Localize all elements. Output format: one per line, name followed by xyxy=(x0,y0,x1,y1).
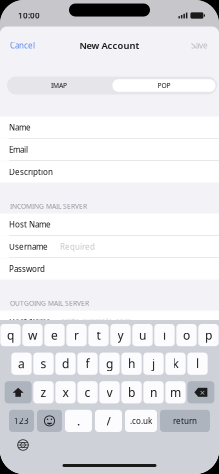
button[interactable]: q xyxy=(0,324,21,346)
button[interactable]: return xyxy=(160,410,210,432)
staticText: INCOMING MAIL SERVER xyxy=(10,202,87,211)
staticText: x xyxy=(62,384,68,400)
staticText: h xyxy=(128,356,135,372)
staticText: s xyxy=(40,356,46,372)
staticText: POP xyxy=(157,81,170,90)
staticText: Username xyxy=(9,241,48,252)
button[interactable]: c xyxy=(77,381,98,403)
button[interactable]: .co.uk xyxy=(125,410,157,432)
button[interactable]: r xyxy=(66,324,87,346)
button[interactable]: f xyxy=(77,353,98,375)
button[interactable]: Next keyboard xyxy=(0,438,32,452)
staticText: m xyxy=(170,384,181,400)
button[interactable]: t xyxy=(88,324,109,346)
staticText: r xyxy=(74,327,79,343)
staticText: y xyxy=(117,327,123,343)
staticText: Save xyxy=(191,40,208,51)
staticText: n xyxy=(150,384,157,400)
button[interactable]: m xyxy=(165,381,186,403)
button[interactable]: d xyxy=(55,353,76,375)
button[interactable]: Username xyxy=(0,236,219,257)
staticText: p xyxy=(205,327,212,343)
staticText: × xyxy=(200,386,205,398)
staticText: Required xyxy=(60,241,95,252)
staticText: q xyxy=(7,327,14,343)
staticText: u xyxy=(139,327,146,343)
button[interactable]: w xyxy=(22,324,43,346)
staticText: a xyxy=(18,356,25,372)
button[interactable]: a xyxy=(11,353,32,375)
button[interactable]: / xyxy=(95,410,122,432)
staticText: b xyxy=(128,384,135,400)
button[interactable]: Delete xyxy=(187,381,214,403)
button[interactable]: Name xyxy=(0,116,219,138)
staticText: / xyxy=(106,413,110,429)
button[interactable]: POP xyxy=(111,76,217,94)
staticText: l xyxy=(196,356,199,372)
staticText: o xyxy=(183,327,190,343)
staticText: t xyxy=(96,327,100,343)
staticText: k xyxy=(172,356,178,372)
staticText: IMAP xyxy=(51,81,67,90)
staticText: Description xyxy=(9,167,53,177)
staticText: Host Name xyxy=(9,316,51,327)
staticText: g xyxy=(106,356,113,372)
staticText: e xyxy=(51,327,58,343)
staticText: Host Name xyxy=(9,219,51,230)
button[interactable]: s xyxy=(33,353,54,375)
staticText: w xyxy=(28,327,37,343)
button[interactable]: p xyxy=(198,324,219,346)
staticText: d xyxy=(62,356,69,372)
button[interactable]: u xyxy=(132,324,153,346)
button[interactable]: g xyxy=(99,353,120,375)
staticText: Email xyxy=(9,144,28,155)
button[interactable]: j xyxy=(143,353,164,375)
button[interactable]: Numbers xyxy=(9,410,34,432)
staticText: New Account xyxy=(79,39,139,52)
staticText: Password xyxy=(9,264,45,274)
button[interactable]: Emoji xyxy=(37,410,62,432)
staticText: smtp.example.com xyxy=(61,316,131,327)
button[interactable]: Shift xyxy=(5,381,32,403)
button[interactable]: v xyxy=(99,381,120,403)
button[interactable]: . xyxy=(65,410,92,432)
staticText: c xyxy=(84,384,90,400)
staticText: f xyxy=(85,356,89,372)
button[interactable]: Password xyxy=(0,258,219,280)
staticText: .co.uk xyxy=(130,416,152,426)
button[interactable]: Cancel xyxy=(0,34,43,56)
staticText: 10:00 xyxy=(18,10,40,21)
button[interactable]: h xyxy=(121,353,142,375)
button[interactable]: o xyxy=(176,324,197,346)
staticText: 123 xyxy=(14,416,29,426)
staticText: i xyxy=(163,327,166,343)
button[interactable]: e xyxy=(44,324,65,346)
button[interactable]: i xyxy=(154,324,175,346)
button[interactable]: Email xyxy=(0,139,219,160)
button[interactable]: Description xyxy=(0,161,219,183)
staticText: Cancel xyxy=(10,40,35,51)
button[interactable]: z xyxy=(33,381,54,403)
staticText: OUTGOING MAIL SERVER xyxy=(10,299,89,308)
button[interactable]: k xyxy=(165,353,186,375)
button[interactable]: Host Name xyxy=(0,311,219,332)
button[interactable]: l xyxy=(187,353,208,375)
button[interactable]: IMAP xyxy=(7,76,111,94)
staticText: . xyxy=(77,413,80,429)
staticText: v xyxy=(106,384,112,400)
staticText: Name xyxy=(9,122,31,133)
staticText: j xyxy=(152,356,155,372)
button[interactable]: b xyxy=(121,381,142,403)
staticText: return xyxy=(173,416,197,426)
button[interactable]: y xyxy=(110,324,131,346)
button[interactable]: x xyxy=(55,381,76,403)
button[interactable]: n xyxy=(143,381,164,403)
button[interactable]: Save xyxy=(183,34,219,56)
button[interactable]: Host Name xyxy=(0,214,219,235)
staticText: z xyxy=(40,384,46,400)
